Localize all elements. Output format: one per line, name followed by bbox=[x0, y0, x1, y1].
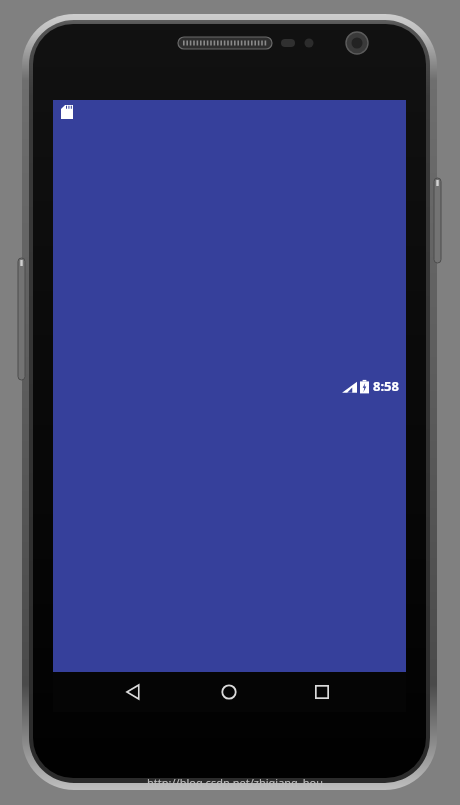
button[interactable]: Back bbox=[113, 680, 153, 704]
button[interactable]: Recent apps bbox=[302, 680, 342, 704]
staticText: http://blog.csdn.net/zhiqiang_hou bbox=[100, 775, 370, 805]
button[interactable]: Home bbox=[209, 680, 249, 704]
staticText: 8:58 bbox=[373, 377, 399, 395]
